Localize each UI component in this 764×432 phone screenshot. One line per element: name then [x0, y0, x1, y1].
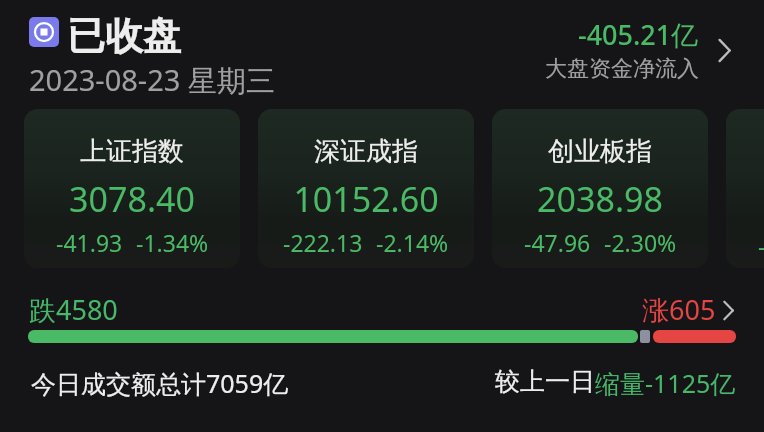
button[interactable]: 跌4580 — [0, 291, 764, 328]
staticText: -222.13 — [283, 227, 363, 258]
button[interactable]: 深证成指 — [258, 109, 474, 268]
button[interactable]: 创业板指 — [492, 109, 708, 268]
button[interactable]: 上证指数 — [24, 109, 240, 268]
button[interactable]: 科创50 — [726, 109, 764, 268]
staticText: 今日成交额总计7059亿 — [31, 366, 289, 400]
staticText: -2.30% — [604, 227, 677, 258]
button[interactable]: 市场状态 — [29, 17, 59, 47]
other: 涨跌分布详情 — [717, 299, 739, 321]
staticText: 跌4580 — [29, 291, 118, 328]
staticText: 大盘资金净流入 — [545, 55, 699, 83]
staticText: 深证成指 — [314, 135, 418, 168]
staticText: 上证指数 — [80, 135, 184, 168]
staticText: 缩量-1125亿 — [595, 366, 736, 400]
other: 查看大盘资金详情 — [711, 37, 737, 63]
staticText: -2.14% — [376, 227, 449, 258]
staticText: 涨605 — [642, 291, 716, 328]
button[interactable]: -405.21亿 — [545, 16, 737, 83]
staticText: -20.50 — [758, 230, 764, 261]
staticText: -41.93 — [56, 227, 123, 258]
staticText: -47.96 — [524, 227, 591, 258]
staticText: -1.34% — [136, 227, 209, 258]
staticText: 2023-08-23 星期三 — [29, 60, 275, 100]
staticText: 2038.98 — [537, 176, 663, 222]
staticText: 创业板指 — [548, 135, 652, 168]
staticText: 已收盘 — [67, 12, 181, 60]
staticText: 3078.40 — [69, 176, 195, 222]
staticText: -405.21亿 — [578, 16, 699, 53]
staticText: 较上一日 — [495, 366, 595, 397]
staticText: 10152.60 — [293, 176, 439, 222]
